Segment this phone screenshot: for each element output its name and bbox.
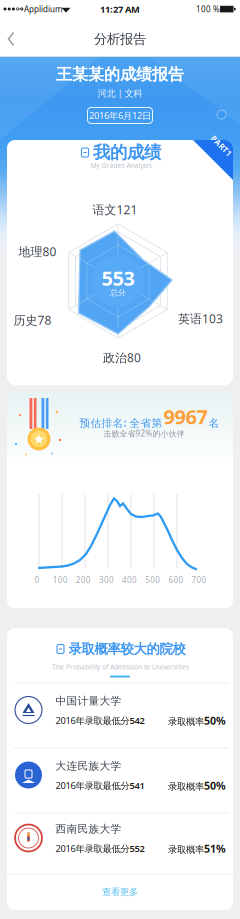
staticText: 西南民族大学 [55, 822, 121, 835]
staticText: 2016年录取最低分541 [55, 779, 144, 792]
staticText: 11:27 AM [100, 3, 140, 15]
staticText: 王某某的成绩报告 [56, 65, 184, 84]
staticText: 录取概率51% [168, 841, 226, 856]
staticText: 政治80 [103, 349, 141, 365]
staticText: 河北 | 文科 [97, 87, 142, 99]
staticText: 300 [99, 575, 114, 585]
staticText: 地理80 [18, 243, 56, 259]
button[interactable]: 查看更多 [7, 875, 233, 909]
button[interactable]: 西南民族大学 [7, 811, 233, 876]
staticText: 100 % [196, 4, 220, 14]
staticText: 总分 [110, 288, 126, 297]
staticText: The Probability of Admission to Universi… [52, 663, 189, 671]
staticText: 2016年6月12日 [89, 109, 151, 122]
button[interactable]: 大连民族大学 [7, 748, 233, 813]
staticText: 100 [53, 575, 68, 585]
staticText: 录取概率较大的院校 [68, 641, 185, 657]
staticText: 400 [122, 575, 137, 585]
staticText: 700 [191, 575, 206, 585]
staticText: 2016年录取最低分542 [55, 714, 144, 727]
staticText: 录取概率50% [168, 713, 226, 728]
staticText: 200 [76, 575, 91, 585]
staticText: 名 [208, 417, 219, 430]
staticText: 大连民族大学 [55, 759, 121, 772]
staticText: 分析报告 [94, 31, 146, 47]
staticText: 查看更多 [102, 886, 138, 898]
staticText: 0 [34, 575, 39, 585]
staticText: 我的成绩 [93, 142, 161, 163]
staticText: 2016年录取最低分552 [55, 842, 144, 855]
staticText: 历史78 [13, 312, 51, 328]
button[interactable]: Back [2, 26, 20, 52]
staticText: 553 [101, 265, 134, 291]
staticText: 600 [168, 575, 183, 585]
staticText: 预估排名: 全省第 [79, 416, 162, 430]
staticText: 语文121 [92, 201, 137, 217]
staticText: 9967 [163, 403, 207, 430]
button[interactable]: 中国计量大学 [7, 683, 233, 748]
staticText: My Grades Analysis [90, 161, 151, 170]
staticText: PART1 [208, 141, 234, 151]
staticText: 英语103 [178, 310, 223, 326]
staticText: 中国计量大学 [55, 694, 121, 707]
staticText: 录取概率50% [168, 778, 226, 793]
staticText: 500 [145, 575, 160, 585]
staticText: 击败全省92%的小伙伴 [103, 428, 184, 439]
staticText: Applidium [24, 4, 62, 14]
